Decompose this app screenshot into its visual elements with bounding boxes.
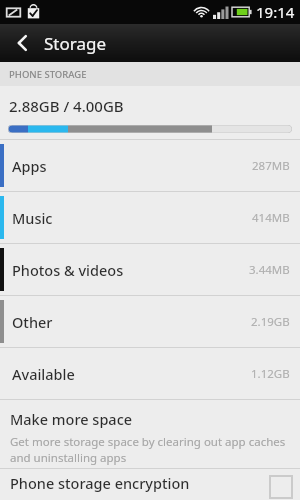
staticText: Get more storage space by clearing out a… xyxy=(10,434,288,465)
staticText: Make more space xyxy=(10,409,133,429)
staticText: 287MB xyxy=(252,158,290,174)
staticText: Photos & videos xyxy=(12,260,124,280)
staticText: Apps xyxy=(12,156,47,176)
staticText: 1.12GB xyxy=(251,366,290,382)
staticText: PHONE STORAGE xyxy=(9,68,87,81)
staticText: 3.44MB xyxy=(249,262,290,278)
staticText: 414MB xyxy=(252,210,290,226)
button[interactable]: Phone storage encryption xyxy=(0,469,300,500)
button[interactable]: Phone storage encryption checkbox xyxy=(270,476,292,498)
staticText: 2.88GB / 4.00GB xyxy=(9,96,124,116)
button[interactable]: Other xyxy=(0,296,300,347)
button[interactable]: Music xyxy=(0,192,300,243)
button[interactable]: Back xyxy=(0,24,44,62)
staticText: Music xyxy=(12,208,53,228)
staticText: Storage xyxy=(44,32,107,55)
button[interactable]: Available xyxy=(0,348,300,399)
button[interactable]: Apps xyxy=(0,140,300,191)
staticText: 2.19GB xyxy=(251,314,290,330)
button[interactable]: Photos & videos xyxy=(0,244,300,295)
staticText: Phone storage encryption xyxy=(10,473,190,493)
button[interactable]: Make more space xyxy=(0,400,300,468)
staticText: Other xyxy=(12,312,53,332)
staticText: Available xyxy=(12,364,75,384)
staticText: 19:14 xyxy=(256,2,295,22)
